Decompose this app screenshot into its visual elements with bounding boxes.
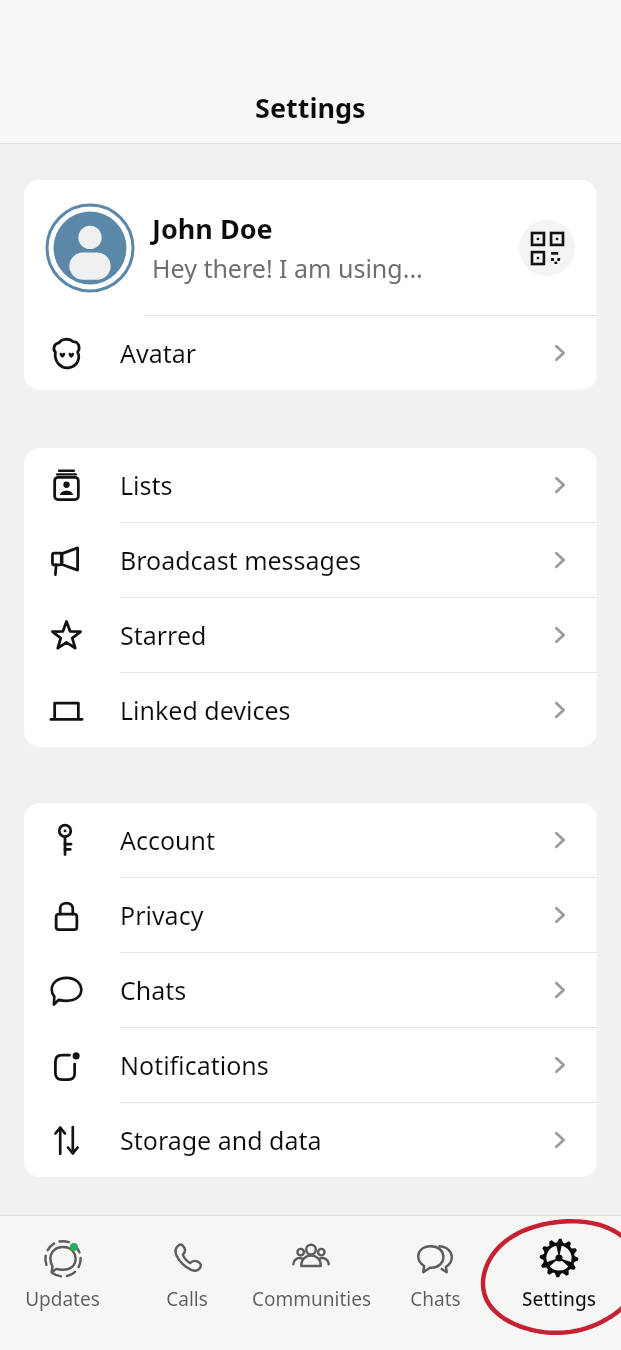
- button[interactable]: Avatar: [24, 316, 597, 390]
- staticText: Privacy: [120, 898, 547, 932]
- staticText: Lists: [120, 468, 547, 502]
- button[interactable]: QR code: [519, 220, 575, 276]
- staticText: Chats: [120, 973, 547, 1007]
- button[interactable]: Settings: [497, 1233, 621, 1316]
- button[interactable]: Broadcast messages: [24, 523, 597, 597]
- button[interactable]: Communities: [249, 1233, 373, 1316]
- staticText: Avatar: [120, 336, 547, 370]
- button[interactable]: Lists: [24, 448, 597, 522]
- staticText: Notifications: [120, 1048, 547, 1082]
- button[interactable]: John Doe: [24, 180, 597, 315]
- button[interactable]: Privacy: [24, 878, 597, 952]
- staticText: Hey there! I am using...: [152, 251, 423, 285]
- staticText: Updates: [25, 1286, 100, 1312]
- staticText: Linked devices: [120, 693, 547, 727]
- staticText: Starred: [120, 618, 547, 652]
- staticText: Chats: [410, 1286, 461, 1312]
- button[interactable]: Chats: [373, 1233, 497, 1316]
- button[interactable]: Starred: [24, 598, 597, 672]
- staticText: John Doe: [152, 210, 273, 247]
- staticText: Settings: [522, 1286, 596, 1312]
- staticText: Broadcast messages: [120, 543, 547, 577]
- button[interactable]: Calls: [125, 1233, 249, 1316]
- staticText: Communities: [252, 1286, 371, 1312]
- button[interactable]: Storage and data: [24, 1103, 597, 1177]
- staticText: Settings: [255, 89, 366, 126]
- staticText: Account: [120, 823, 547, 857]
- staticText: Calls: [166, 1286, 208, 1312]
- staticText: Storage and data: [120, 1123, 547, 1157]
- button[interactable]: Chats: [24, 953, 597, 1027]
- button[interactable]: Notifications: [24, 1028, 597, 1102]
- button[interactable]: Account: [24, 803, 597, 877]
- button[interactable]: Updates: [0, 1233, 125, 1316]
- button[interactable]: Linked devices: [24, 673, 597, 747]
